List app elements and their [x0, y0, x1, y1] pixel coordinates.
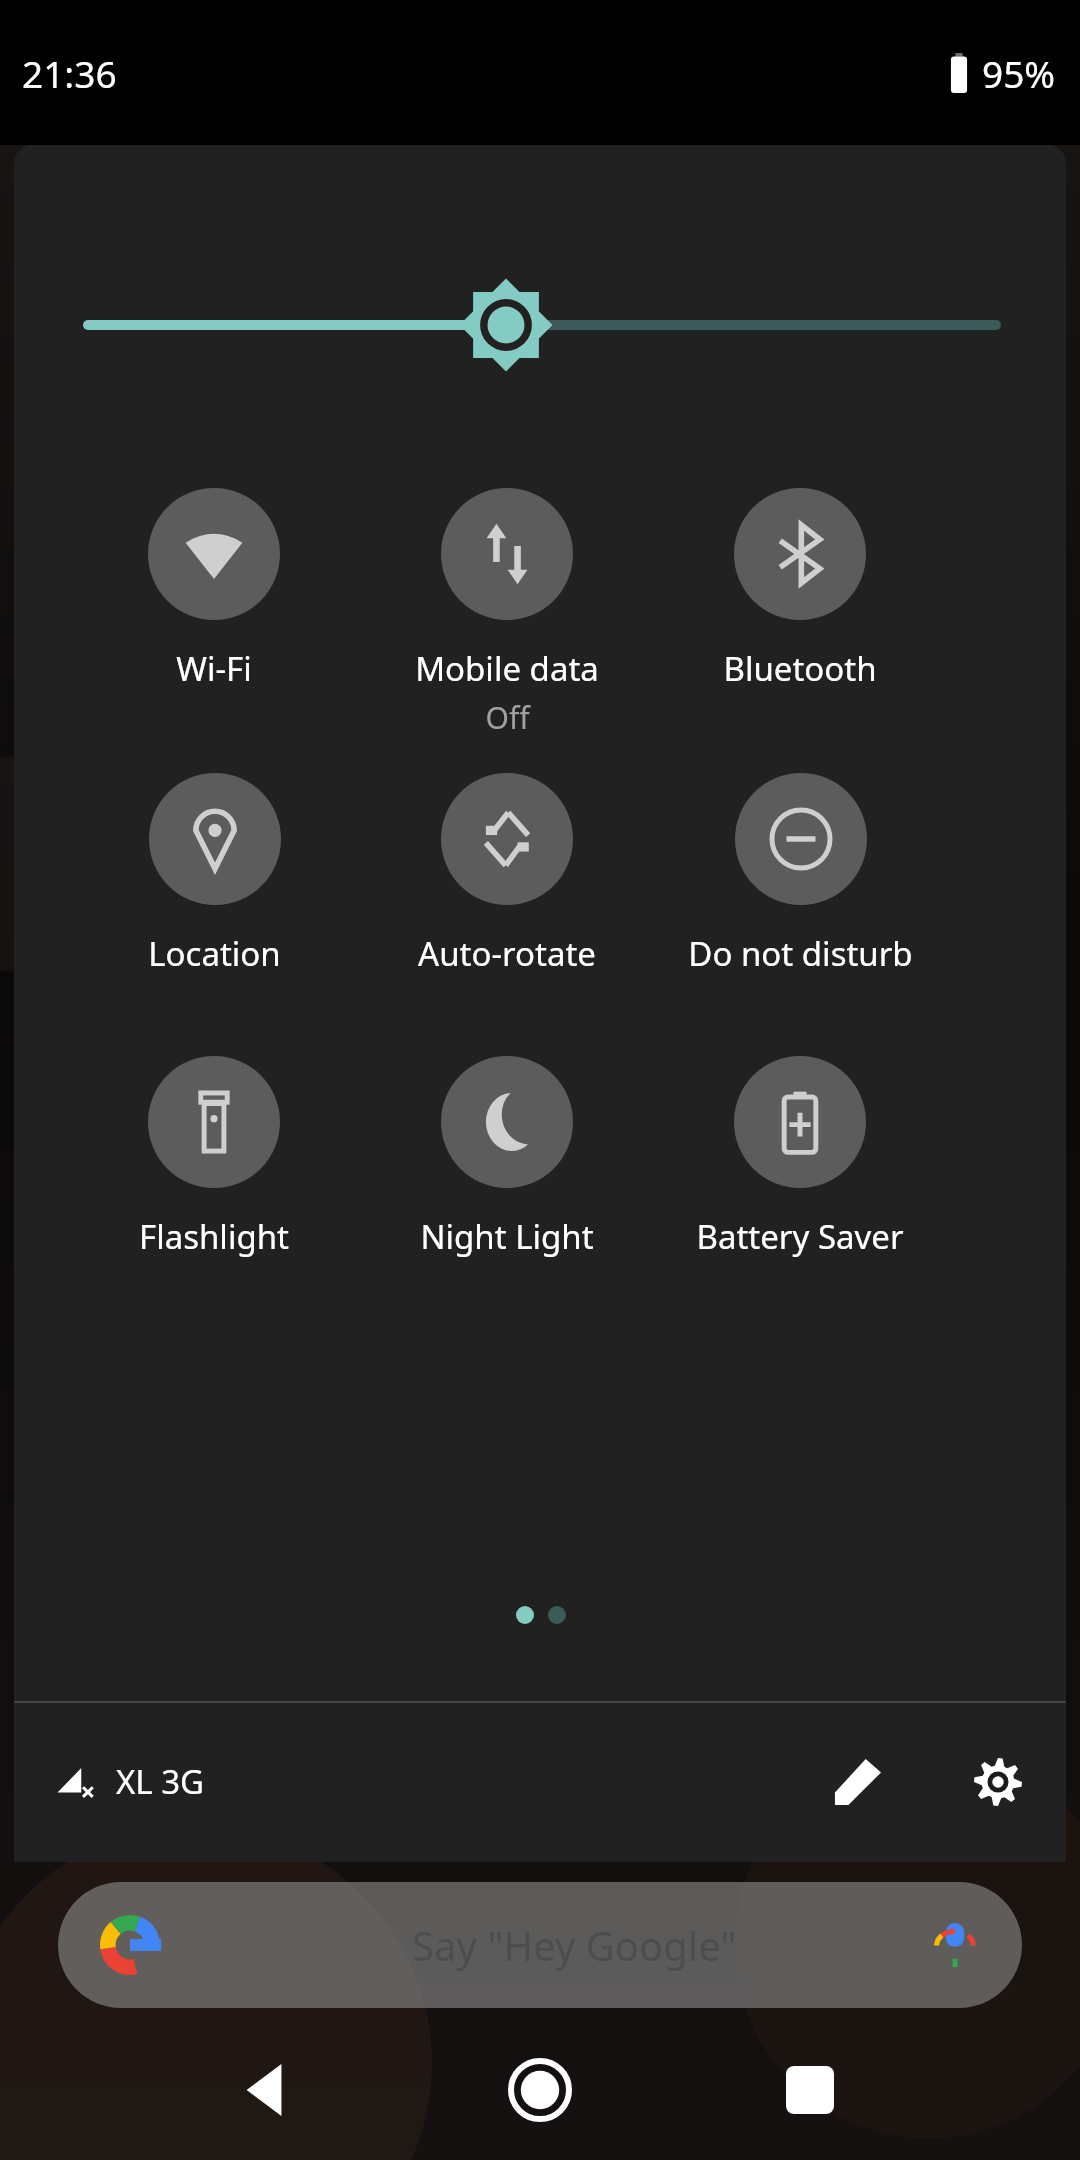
button[interactable]: Location: [68, 773, 360, 1033]
staticText: Battery Saver: [696, 1214, 904, 1259]
staticText: 95%: [982, 48, 1056, 98]
button[interactable]: Flashlight: [68, 1056, 360, 1316]
button[interactable]: Edit: [818, 1742, 898, 1822]
button[interactable]: Mobile data: [361, 488, 653, 748]
staticText: Flashlight: [139, 1214, 289, 1259]
staticText: Location: [148, 931, 281, 976]
button[interactable]: Recents: [750, 2030, 870, 2150]
staticText: Wi-Fi: [176, 646, 252, 691]
button[interactable]: Do not disturb: [654, 773, 946, 1033]
staticText: Night Light: [420, 1214, 594, 1259]
button[interactable]: Battery Saver: [654, 1056, 946, 1316]
staticText: Mobile data: [415, 646, 599, 691]
button[interactable]: Brightness: [14, 265, 1066, 385]
staticText: Bluetooth: [723, 646, 877, 691]
staticText: Say "Hey Google": [412, 1918, 737, 1972]
button[interactable]: Night Light: [361, 1056, 653, 1316]
staticText: Off: [485, 697, 530, 738]
button[interactable]: Home: [480, 2030, 600, 2150]
staticText: Do not disturb: [688, 931, 913, 976]
button[interactable]: Bluetooth: [654, 488, 946, 748]
button[interactable]: XL 3G: [54, 1759, 205, 1804]
button[interactable]: Back: [210, 2030, 330, 2150]
staticText: XL 3G: [116, 1759, 205, 1804]
staticText: 21:36: [22, 48, 117, 98]
button[interactable]: Auto-rotate: [361, 773, 653, 1033]
button[interactable]: Wi-Fi: [68, 488, 360, 748]
button[interactable]: Settings: [958, 1742, 1038, 1822]
staticText: Auto-rotate: [418, 931, 596, 976]
button[interactable]: Say "Hey Google": [58, 1882, 1022, 2008]
